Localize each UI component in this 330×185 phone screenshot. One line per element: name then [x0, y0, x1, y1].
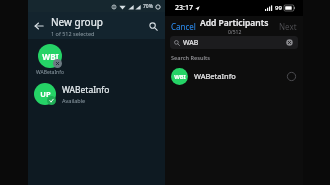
staticText: WABetaInfo — [62, 84, 110, 96]
staticText: 99 — [275, 4, 282, 12]
staticText: Available — [62, 97, 86, 104]
button[interactable]: Cancel — [165, 19, 202, 34]
button[interactable]: WBI — [33, 43, 67, 77]
button[interactable]: WAB — [170, 36, 298, 49]
staticText: Next — [279, 21, 297, 32]
button[interactable]: Clear text — [285, 38, 294, 47]
staticText: WABetaInfo — [194, 71, 236, 81]
staticText: New group — [51, 15, 103, 29]
button[interactable]: Back — [30, 17, 48, 35]
staticText: Add Participants — [200, 17, 269, 29]
staticText: WAB — [183, 38, 199, 48]
button[interactable]: WBI — [165, 65, 303, 87]
staticText: 23:17 — [175, 3, 193, 13]
staticText: WBI — [42, 51, 59, 62]
button[interactable]: Search — [144, 17, 162, 35]
staticText: WBI — [174, 73, 186, 81]
staticText: Cancel — [171, 21, 196, 32]
staticText: WABetaInfo — [36, 69, 64, 76]
staticText: 70% — [143, 3, 153, 10]
staticText: UP — [40, 89, 51, 99]
button[interactable]: UP — [28, 80, 165, 108]
staticText: Search Results — [171, 54, 210, 61]
button[interactable]: Next — [273, 19, 303, 34]
staticText: 0/512 — [228, 29, 242, 36]
button[interactable]: Select contact — [285, 70, 297, 82]
staticText: 1 of 512 selected — [51, 30, 95, 37]
